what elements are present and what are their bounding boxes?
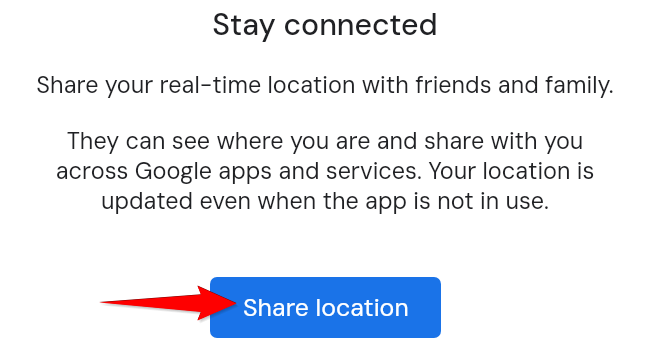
staticText: Stay connected	[0, 5, 650, 44]
staticText: Share location	[243, 291, 409, 323]
button[interactable]: Share location	[210, 277, 441, 338]
staticText: They can see where you are and share wit…	[50, 126, 600, 216]
staticText: Share your real-time location with frien…	[0, 70, 650, 100]
other: Arrow pointing at the Share location but…	[0, 0, 650, 352]
